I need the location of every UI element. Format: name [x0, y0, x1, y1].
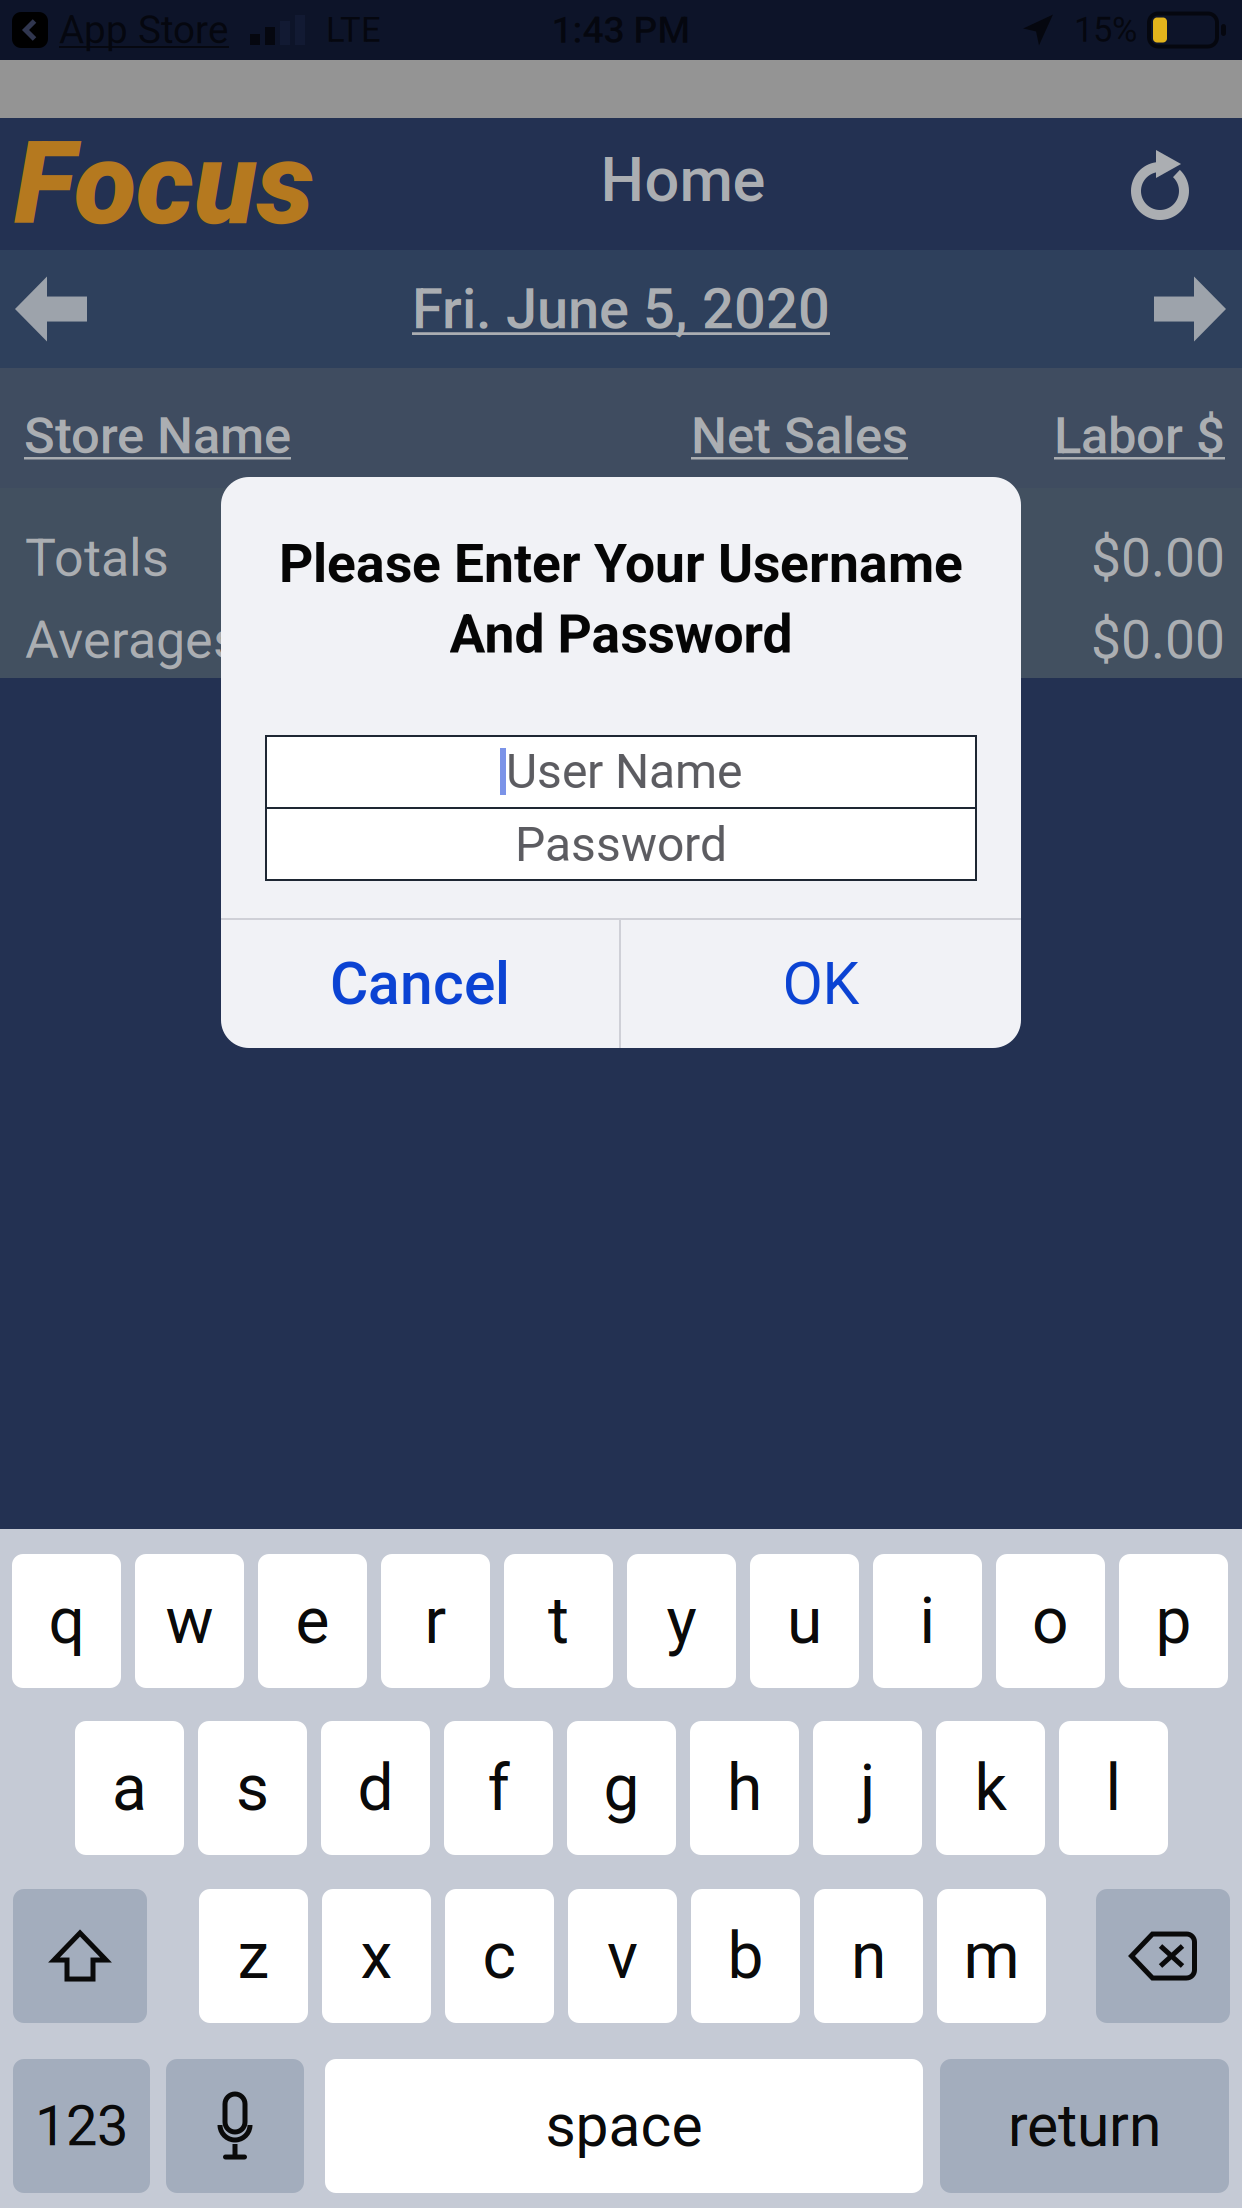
staticText: 1:43 PM [551, 8, 690, 52]
staticText: App Store [59, 7, 229, 53]
button[interactable]: Next day [1153, 250, 1227, 368]
button[interactable]: y [627, 1554, 736, 1688]
staticText: Labor $ [1054, 406, 1225, 466]
button[interactable]: g [567, 1721, 676, 1855]
button[interactable]: t [504, 1554, 613, 1688]
staticText: z [237, 1918, 269, 1993]
staticText: f [487, 1750, 509, 1825]
button[interactable]: i [873, 1554, 982, 1688]
staticText: Totals [25, 527, 169, 588]
staticText: And Password [449, 603, 792, 665]
button[interactable]: f [444, 1721, 553, 1855]
button[interactable]: w [135, 1554, 244, 1688]
staticText: n [851, 1918, 886, 1993]
staticText: d [357, 1750, 393, 1825]
staticText: a [112, 1750, 147, 1825]
staticText: s [236, 1750, 269, 1825]
staticText: j [860, 1750, 875, 1825]
button[interactable]: q [12, 1554, 121, 1688]
button[interactable]: u [750, 1554, 859, 1688]
button[interactable]: Refresh [1106, 129, 1206, 239]
button[interactable]: c [445, 1889, 554, 2023]
button[interactable]: 123 [13, 2059, 150, 2193]
staticText: p [1155, 1583, 1191, 1658]
staticText: Cancel [330, 950, 510, 1018]
button[interactable]: k [936, 1721, 1045, 1855]
button[interactable]: Cancel [221, 920, 619, 1048]
button[interactable]: Labor $ [1054, 376, 1225, 496]
button[interactable]: Fri. June 5, 2020 [412, 250, 830, 368]
staticText: k [974, 1750, 1006, 1825]
button[interactable]: o [996, 1554, 1105, 1688]
button[interactable]: z [199, 1889, 308, 2023]
staticText: 123 [35, 2093, 128, 2159]
button[interactable]: Dictation [166, 2059, 304, 2193]
staticText: User Name [506, 743, 742, 800]
staticText: return [1008, 2092, 1161, 2160]
staticText: q [48, 1583, 84, 1658]
button[interactable]: space [325, 2059, 923, 2193]
button[interactable]: Delete [1096, 1889, 1230, 2023]
button[interactable]: a [75, 1721, 184, 1855]
staticText: t [548, 1583, 569, 1658]
button[interactable]: m [937, 1889, 1046, 2023]
button[interactable]: s [198, 1721, 307, 1855]
staticText: $0.00 [1091, 527, 1225, 589]
button[interactable]: e [258, 1554, 367, 1688]
button[interactable]: Net Sales [691, 376, 908, 496]
staticText: Focus [14, 117, 314, 251]
staticText: x [360, 1918, 392, 1993]
button[interactable]: n [814, 1889, 923, 2023]
staticText: Please Enter Your Username [279, 532, 963, 595]
staticText: b [727, 1918, 763, 1993]
staticText: 15% [1074, 10, 1137, 50]
staticText: LTE [326, 10, 381, 50]
staticText: Password [515, 816, 727, 873]
staticText: r [424, 1583, 446, 1658]
staticText: Net Sales [691, 406, 908, 466]
staticText: space [545, 2092, 702, 2160]
button[interactable]: return [940, 2059, 1229, 2193]
staticText: Store Name [24, 406, 291, 466]
staticText: u [787, 1583, 822, 1658]
staticText: o [1032, 1583, 1069, 1658]
staticText: OK [782, 950, 859, 1018]
staticText: c [482, 1918, 516, 1993]
button[interactable]: Shift [13, 1889, 147, 2023]
button[interactable]: l [1059, 1721, 1168, 1855]
staticText: $0.00 [1091, 609, 1225, 671]
staticText: h [727, 1750, 762, 1825]
button[interactable]: x [322, 1889, 431, 2023]
button[interactable]: Previous day [14, 250, 88, 368]
staticText: i [919, 1583, 935, 1658]
staticText: w [165, 1583, 213, 1658]
button[interactable]: Store Name [24, 376, 291, 496]
staticText: e [295, 1583, 329, 1658]
staticText: l [1105, 1750, 1121, 1825]
button[interactable]: j [813, 1721, 922, 1855]
button[interactable]: OK [621, 920, 1021, 1048]
staticText: g [603, 1750, 639, 1825]
staticText: v [607, 1918, 638, 1993]
button[interactable]: r [381, 1554, 490, 1688]
button[interactable]: v [568, 1889, 677, 2023]
button[interactable]: h [690, 1721, 799, 1855]
button[interactable]: b [691, 1889, 800, 2023]
staticText: Fri. June 5, 2020 [412, 276, 830, 342]
staticText: y [666, 1583, 696, 1658]
staticText: m [963, 1918, 1019, 1993]
button[interactable]: p [1119, 1554, 1228, 1688]
button[interactable]: d [321, 1721, 430, 1855]
staticText: Home [600, 144, 765, 216]
staticText: Averages [25, 609, 240, 670]
